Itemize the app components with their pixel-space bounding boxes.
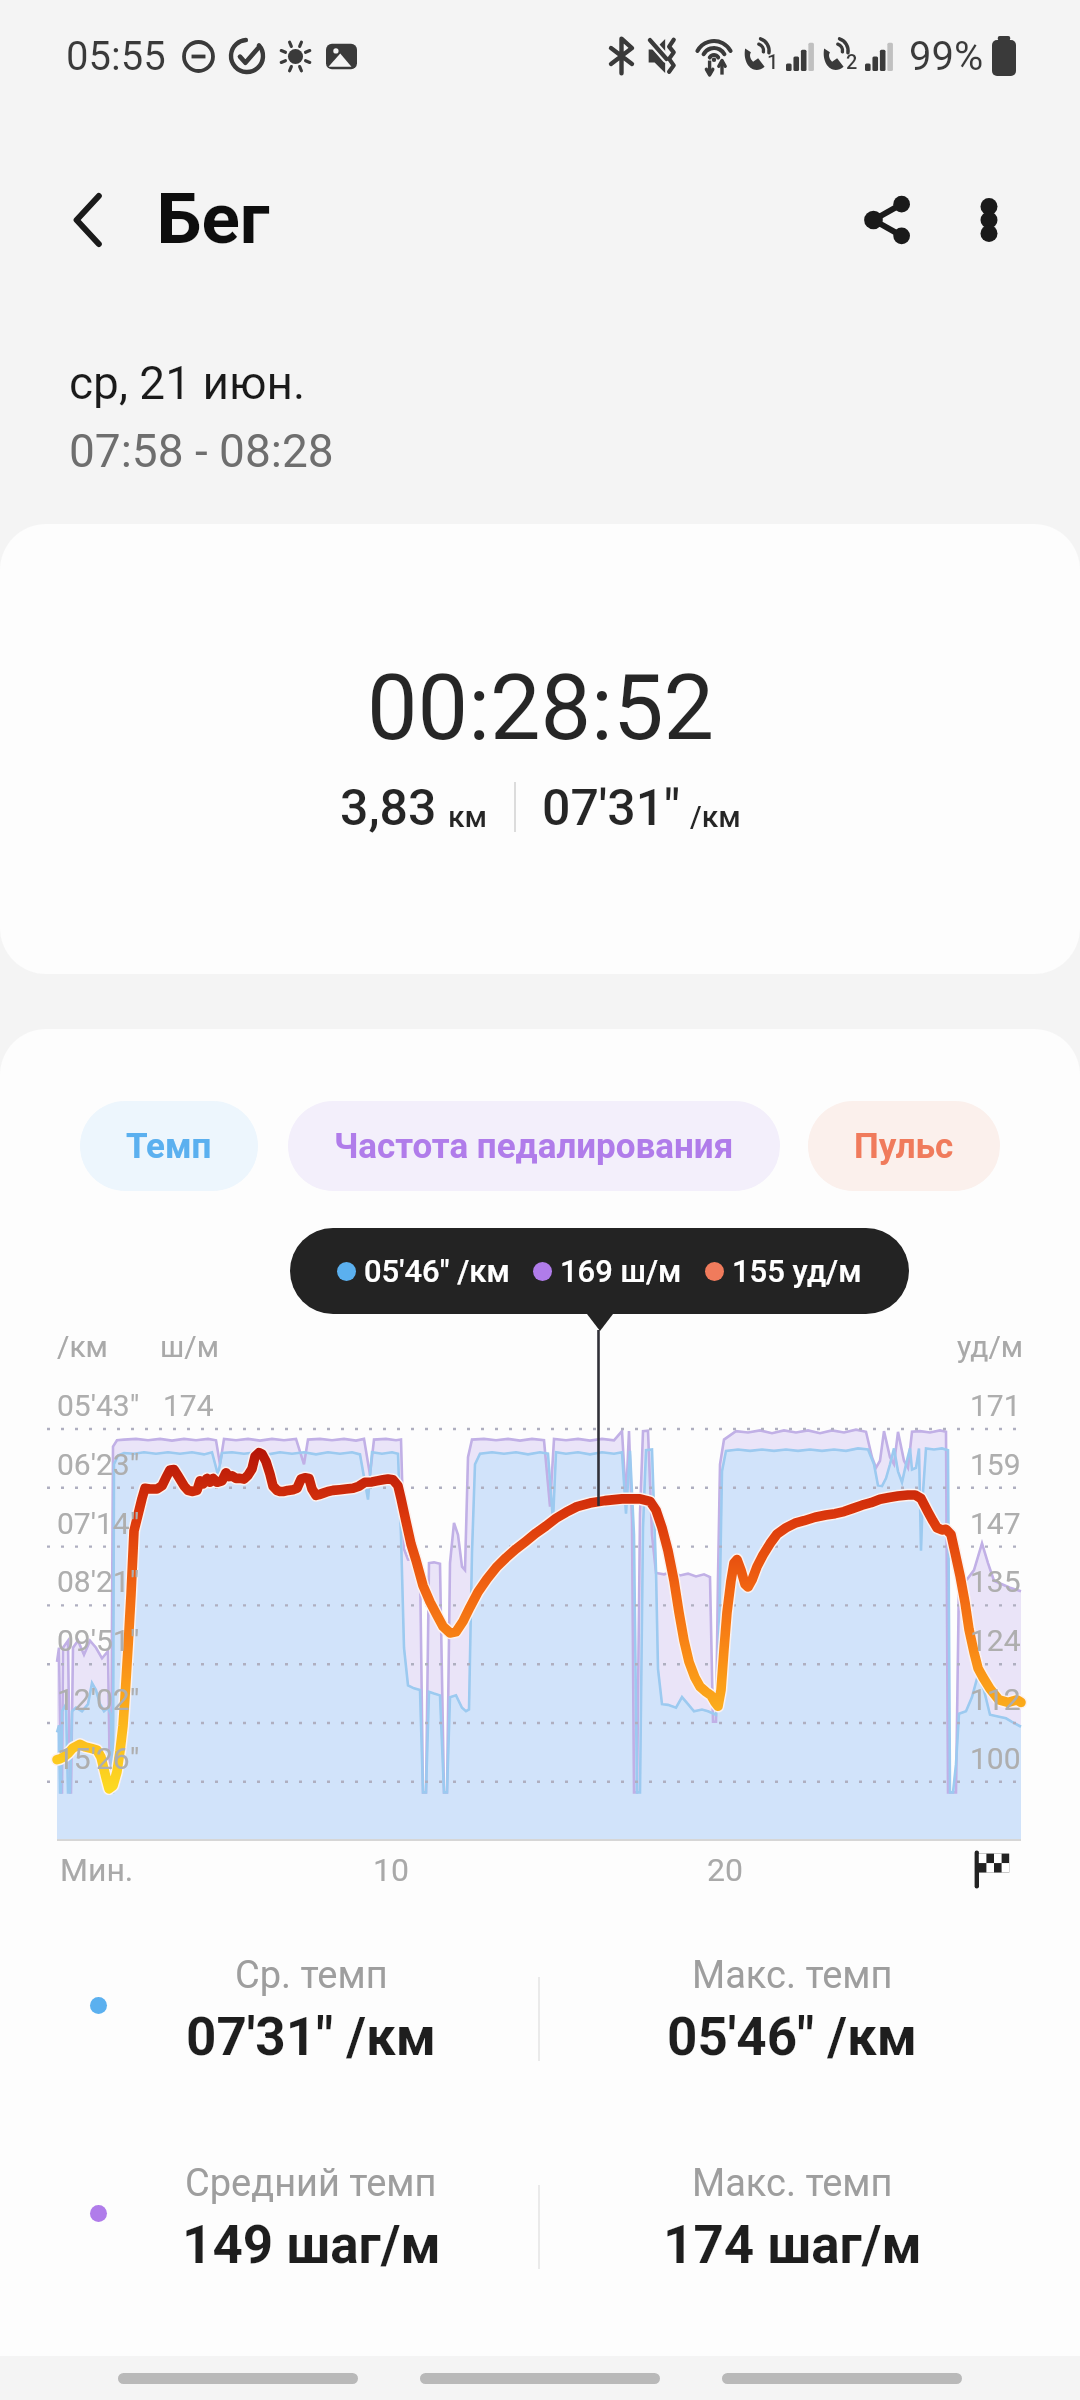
staticText: 100 xyxy=(970,1741,1021,1776)
staticText: 174 шаг/м xyxy=(663,2214,922,2276)
staticText: 12'02" xyxy=(57,1682,140,1717)
staticText: 15'26" xyxy=(57,1741,140,1776)
staticText: Средний темп xyxy=(185,2161,437,2206)
staticText: 155 уд/м xyxy=(732,1253,862,1289)
staticText: 05'46" /км xyxy=(667,2006,917,2068)
staticText: Мин. xyxy=(60,1851,134,1889)
button[interactable]: Частота педалирования xyxy=(288,1101,780,1191)
staticText: 1 xyxy=(767,50,779,73)
button[interactable]: More options xyxy=(943,174,1035,266)
staticText: 174 xyxy=(163,1388,214,1423)
staticText: 10 xyxy=(373,1851,409,1889)
staticText: ш/м xyxy=(160,1329,219,1364)
staticText: 07'14" xyxy=(57,1506,140,1541)
button[interactable] xyxy=(118,2373,358,2384)
button[interactable]: Пульс xyxy=(808,1101,1000,1191)
staticText: 07'31" xyxy=(542,779,681,838)
staticText: 05'43" xyxy=(57,1388,140,1423)
staticText: 2 xyxy=(846,50,858,73)
staticText: Пульс xyxy=(854,1126,954,1167)
staticText: ср, 21 июн. xyxy=(69,356,306,410)
staticText: 159 xyxy=(970,1447,1021,1482)
staticText: уд/м xyxy=(957,1329,1024,1364)
staticText: 124 xyxy=(970,1623,1021,1658)
staticText: Макс. темп xyxy=(692,2161,893,2206)
staticText: Ср. темп xyxy=(235,1953,388,1998)
staticText: Темп xyxy=(126,1126,212,1167)
button[interactable]: 00:28:52 xyxy=(0,524,1080,974)
button[interactable]: Back xyxy=(42,174,134,266)
staticText: 147 xyxy=(970,1506,1021,1541)
staticText: 09'51" xyxy=(57,1623,140,1658)
staticText: /км xyxy=(690,799,741,834)
staticText: 00:28:52 xyxy=(367,656,715,761)
staticText: 08'21" xyxy=(57,1564,140,1599)
staticText: 07'31" /км xyxy=(186,2006,436,2068)
button[interactable]: Share xyxy=(842,174,934,266)
staticText: Частота педалирования xyxy=(334,1126,734,1167)
button[interactable] xyxy=(420,2373,660,2384)
staticText: 05'46" /км xyxy=(364,1253,510,1289)
staticText: 169 ш/м xyxy=(560,1253,682,1289)
staticText: 3,83 xyxy=(340,779,437,838)
staticText: 171 xyxy=(970,1388,1021,1423)
staticText: 99% xyxy=(909,33,984,80)
staticText: /км xyxy=(57,1329,108,1364)
staticText: 135 xyxy=(970,1564,1021,1599)
button[interactable]: Темп xyxy=(80,1101,258,1191)
staticText: 07:58 - 08:28 xyxy=(69,424,334,478)
staticText: 06'23" xyxy=(57,1447,140,1482)
staticText: Макс. темп xyxy=(692,1953,893,1998)
staticText: Бег xyxy=(157,177,270,260)
staticText: 149 шаг/м xyxy=(182,2214,441,2276)
staticText: км xyxy=(448,799,488,834)
staticText: 05:55 xyxy=(66,33,166,80)
button[interactable] xyxy=(722,2373,962,2384)
staticText: 112 xyxy=(970,1682,1021,1717)
staticText: 20 xyxy=(707,1851,743,1889)
